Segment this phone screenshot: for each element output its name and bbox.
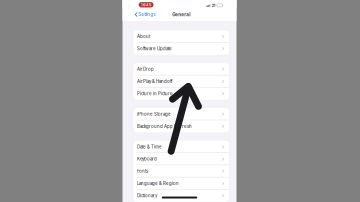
button[interactable]: Background App Refresh	[133, 120, 229, 132]
staticText: Language & Region	[137, 181, 179, 186]
staticText: Date & Time	[137, 144, 162, 149]
button[interactable]: AirPlay & Handoff	[133, 75, 229, 87]
button[interactable]: Language & Region	[133, 177, 229, 189]
staticText: General	[172, 12, 190, 17]
staticText: Picture in Picture	[137, 91, 173, 96]
staticText: AirDrop	[137, 67, 154, 72]
staticText: 16:45	[141, 2, 151, 7]
button[interactable]: Keyboard	[133, 153, 229, 165]
staticText: Settings	[138, 12, 155, 17]
staticText: About	[137, 34, 150, 39]
button[interactable]: Fonts	[133, 165, 229, 177]
button[interactable]: Software Update	[133, 43, 229, 55]
button[interactable]: Dictionary	[133, 189, 229, 202]
staticText: iPhone Storage	[137, 111, 171, 117]
staticText: AirPlay & Handoff	[137, 79, 173, 84]
staticText: Software Update	[137, 46, 172, 51]
button[interactable]: Picture in Picture	[133, 87, 229, 100]
staticText: 21	[212, 3, 216, 8]
button[interactable]: AirDrop	[133, 63, 229, 75]
staticText: Fonts	[137, 169, 148, 174]
staticText: Background App Refresh	[137, 124, 192, 129]
button[interactable]: About	[133, 30, 229, 43]
button[interactable]: Settings	[122, 10, 155, 19]
staticText: Keyboard	[137, 156, 157, 162]
staticText: Dictionary	[137, 193, 157, 198]
button[interactable]: iPhone Storage	[133, 108, 229, 120]
button[interactable]: Date & Time	[133, 141, 229, 153]
